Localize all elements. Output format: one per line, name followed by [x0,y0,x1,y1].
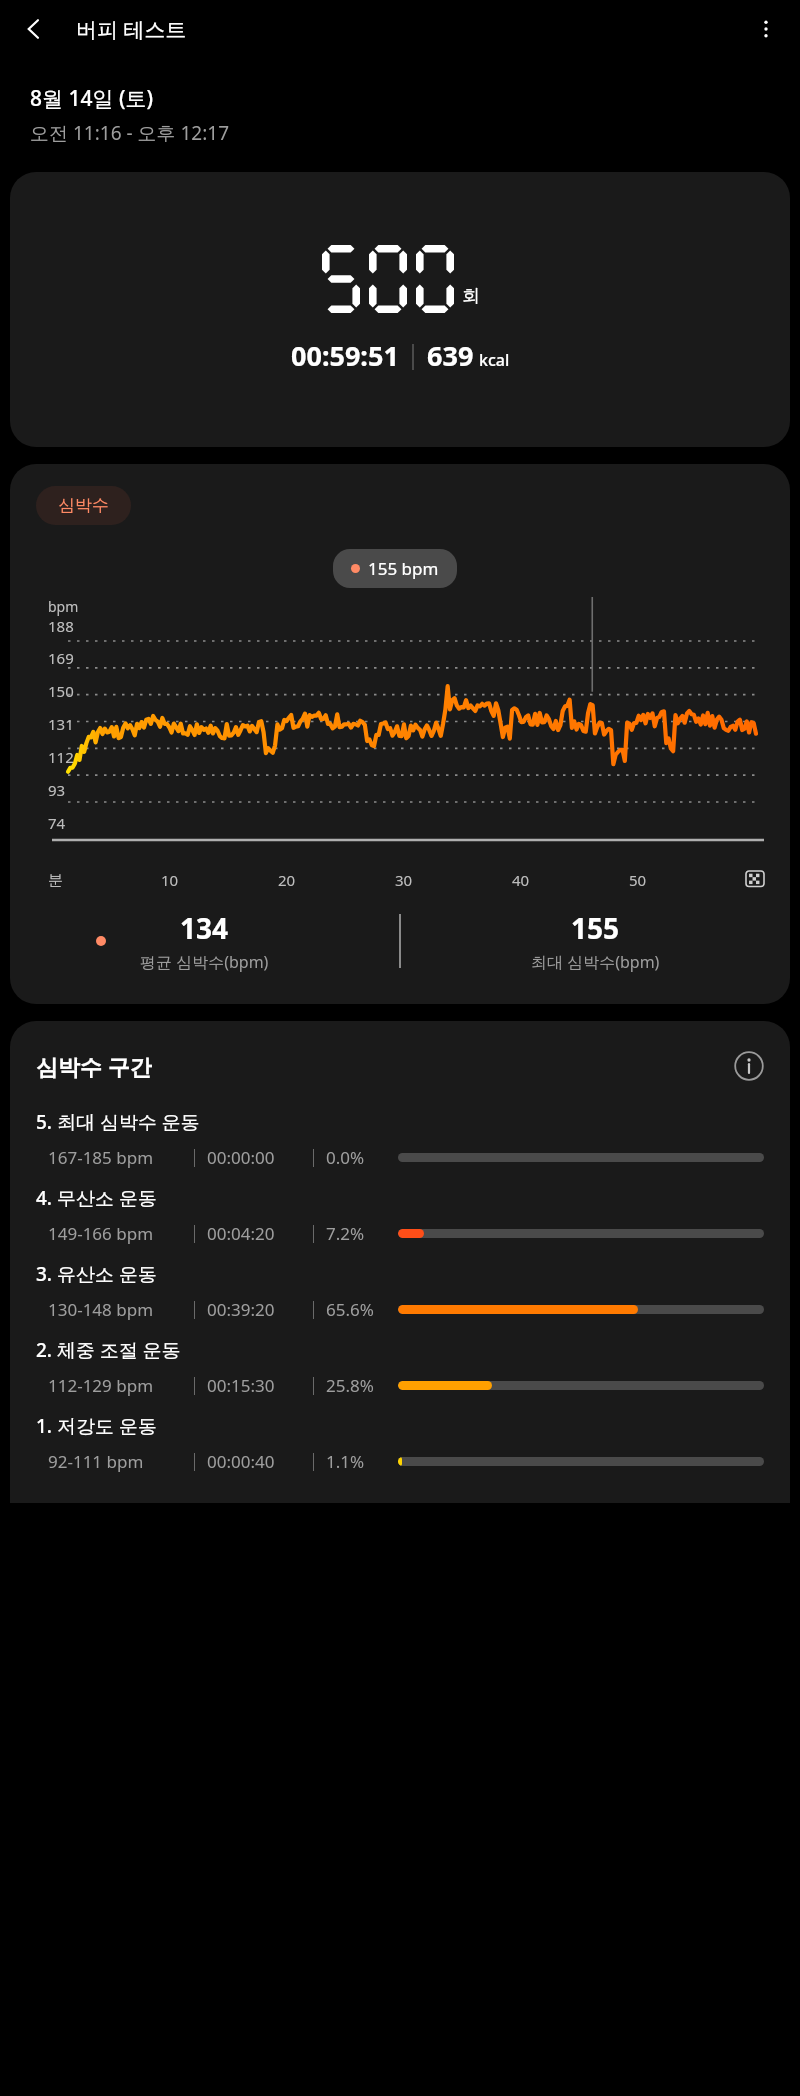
staticText: 오전 11:16 - 오후 12:17 [30,120,230,146]
staticText: 65.6% [326,1298,392,1321]
staticText: 00:00:40 [207,1450,313,1473]
staticText: 112 [48,747,74,767]
staticText: 169 [48,648,74,668]
staticText: 93 [48,780,66,800]
staticText: 5. 최대 심박수 운동 [36,1109,200,1135]
staticText: 50 [629,870,647,890]
staticText: 00:59:51 [291,337,399,374]
staticText: 30 [395,870,413,890]
staticText: 131 [48,714,74,734]
button[interactable]: 5. 최대 심박수 운동 [10,1099,790,1175]
staticText: 155 [571,909,620,947]
staticText: 20 [278,870,296,890]
staticText: 639 [427,337,474,374]
staticText: kcal [479,349,510,371]
staticText: 167-185 bpm [48,1146,194,1169]
staticText: 112-129 bpm [48,1374,194,1397]
staticText: 2. 체중 조절 운동 [36,1337,181,1363]
staticText: 74 [48,813,66,833]
staticText: 00:00:00 [207,1146,313,1169]
staticText: 평균 심박수(bpm) [140,951,269,973]
staticText: 분 [48,871,63,890]
staticText: 7.2% [326,1222,392,1245]
button[interactable]: Information [730,1047,768,1085]
staticText: 회 [462,285,480,308]
staticText: bpm [48,597,79,616]
button[interactable]: More options [742,5,790,53]
button[interactable]: 2. 체중 조절 운동 [10,1327,790,1403]
staticText: 155 bpm [368,557,439,580]
staticText: 25.8% [326,1374,392,1397]
staticText: 130-148 bpm [48,1298,194,1321]
staticText: 00:15:30 [207,1374,313,1397]
staticText: 1. 저강도 운동 [36,1413,157,1439]
staticText: 4. 무산소 운동 [36,1185,157,1211]
staticText: 3. 유산소 운동 [36,1261,157,1287]
staticText: 134 [180,909,229,947]
staticText: 00:39:20 [207,1298,313,1321]
staticText: 8월 14일 (토) [30,84,154,113]
staticText: 150 [48,681,74,701]
staticText: 1.1% [326,1450,392,1473]
staticText: 0.0% [326,1146,392,1169]
button[interactable]: 3. 유산소 운동 [10,1251,790,1327]
button[interactable]: 회 [10,172,790,447]
staticText: 버피 테스트 [76,15,187,44]
button[interactable]: 심박수 [36,486,131,525]
button[interactable]: 1. 저강도 운동 [10,1403,790,1479]
staticText: 10 [161,870,179,890]
staticText: 심박수 구간 [36,1051,152,1081]
staticText: 최대 심박수(bpm) [531,951,660,973]
staticText: 188 [48,616,74,636]
button[interactable]: 4. 무산소 운동 [10,1175,790,1251]
staticText: 149-166 bpm [48,1222,194,1245]
staticText: 40 [512,870,530,890]
staticText: 00:04:20 [207,1222,313,1245]
staticText: 92-111 bpm [48,1450,194,1473]
button[interactable]: Back [10,5,58,53]
staticText: 심박수 [58,495,109,516]
